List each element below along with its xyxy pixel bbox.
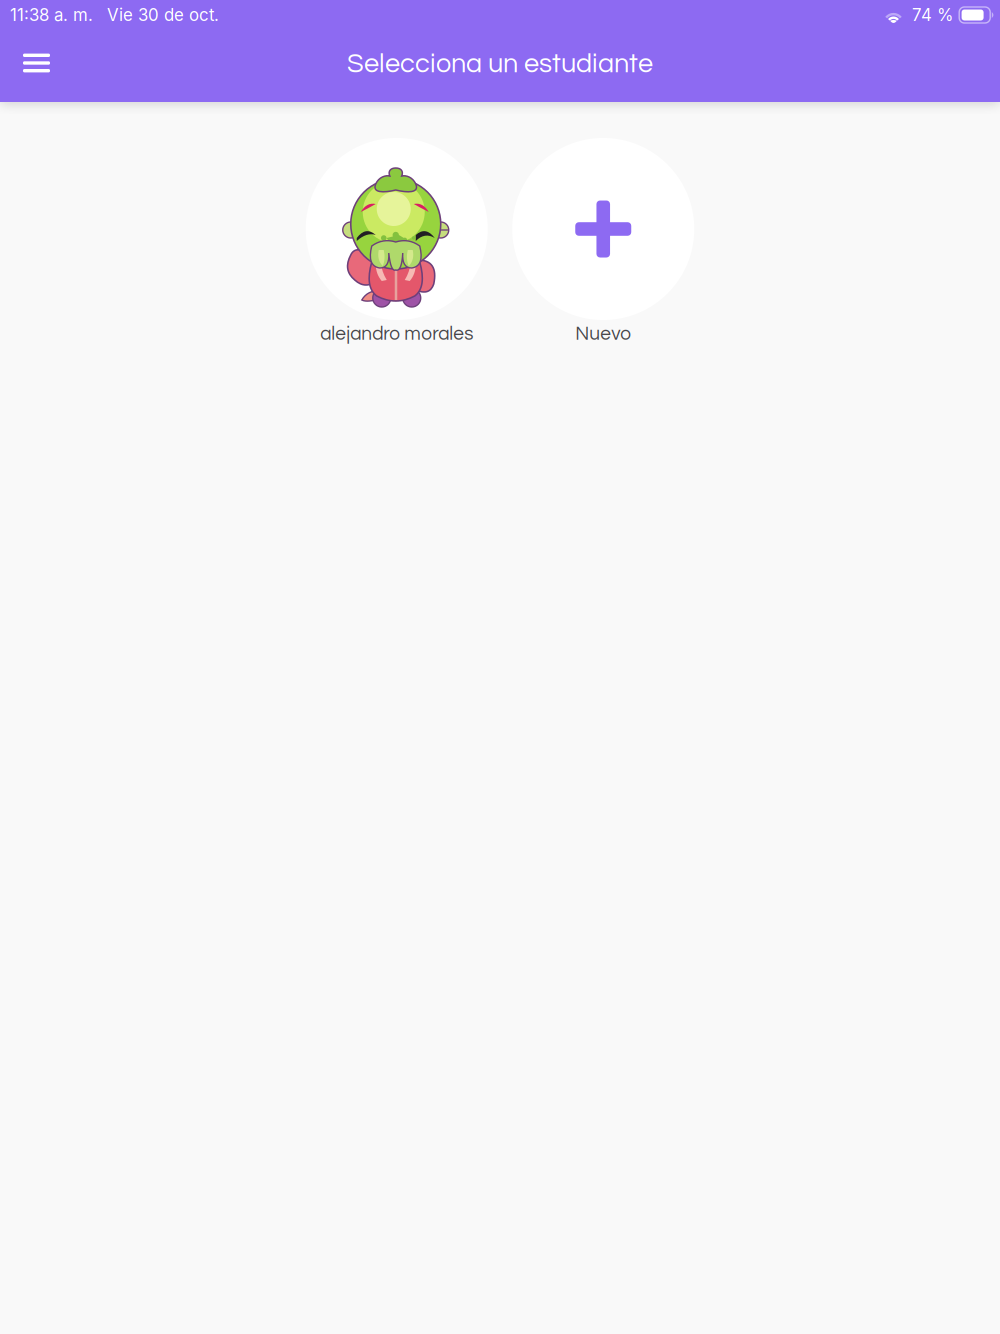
staticText: 11:38 a. m. bbox=[10, 5, 93, 25]
staticText: alejandro morales bbox=[320, 324, 473, 344]
button[interactable]: alejandro morales bbox=[306, 138, 488, 344]
staticText: Vie 30 de oct. bbox=[107, 5, 219, 25]
button[interactable]: Nuevo bbox=[512, 138, 694, 344]
staticText: Selecciona un estudiante bbox=[347, 50, 653, 78]
staticText: 74 % bbox=[912, 5, 953, 25]
staticText: Nuevo bbox=[575, 324, 631, 344]
button[interactable]: Menu bbox=[0, 42, 69, 90]
